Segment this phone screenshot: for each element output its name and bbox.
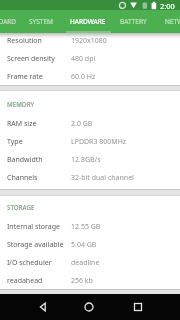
staticText: deadline [71, 258, 100, 268]
staticText: Bandwidth [7, 155, 43, 165]
staticText: SYSTEM [29, 17, 53, 26]
staticText: 1920x1080 [71, 36, 107, 46]
staticText: 32-bit dual channel [71, 173, 134, 183]
staticText: 2.0 GB [71, 119, 93, 129]
staticText: Storage available [7, 240, 64, 250]
button[interactable] [124, 294, 152, 320]
button[interactable] [75, 294, 103, 320]
staticText: BATTERY [120, 17, 147, 26]
staticText: Resolution [7, 36, 42, 46]
button[interactable]: SYSTEM [24, 10, 58, 32]
staticText: 60.0 Hz [71, 72, 96, 82]
staticText: Internal storage [7, 222, 60, 232]
staticText: NETWORK [165, 17, 180, 26]
staticText: 12.8GB/s [71, 155, 101, 165]
staticText: BOARD [0, 17, 17, 26]
staticText: 5.04 GB [71, 240, 97, 250]
staticText: 480 dpi [71, 54, 96, 64]
button[interactable] [28, 294, 56, 320]
staticText: 12.55 GB [71, 222, 101, 232]
staticText: Screen density [7, 54, 55, 64]
staticText: HARDWARE [70, 17, 106, 26]
staticText: LPDDR3 800MHz [71, 137, 127, 147]
staticText: 256 kb [71, 276, 93, 286]
staticText: I/O scheduler [7, 258, 52, 268]
staticText: 2:00 [160, 1, 175, 11]
button[interactable]: HARDWARE [66, 10, 110, 32]
staticText: STORAGE [7, 203, 35, 211]
button[interactable]: BOARD [0, 10, 25, 32]
button[interactable]: NETWORK [160, 10, 180, 32]
staticText: Channels [7, 173, 38, 183]
button[interactable]: BATTERY [116, 10, 150, 32]
staticText: Type [7, 137, 23, 147]
staticText: MEMORY [7, 100, 35, 108]
staticText: Frame rate [7, 72, 43, 82]
staticText: RAM size [7, 119, 37, 129]
staticText: readahead [7, 276, 43, 286]
